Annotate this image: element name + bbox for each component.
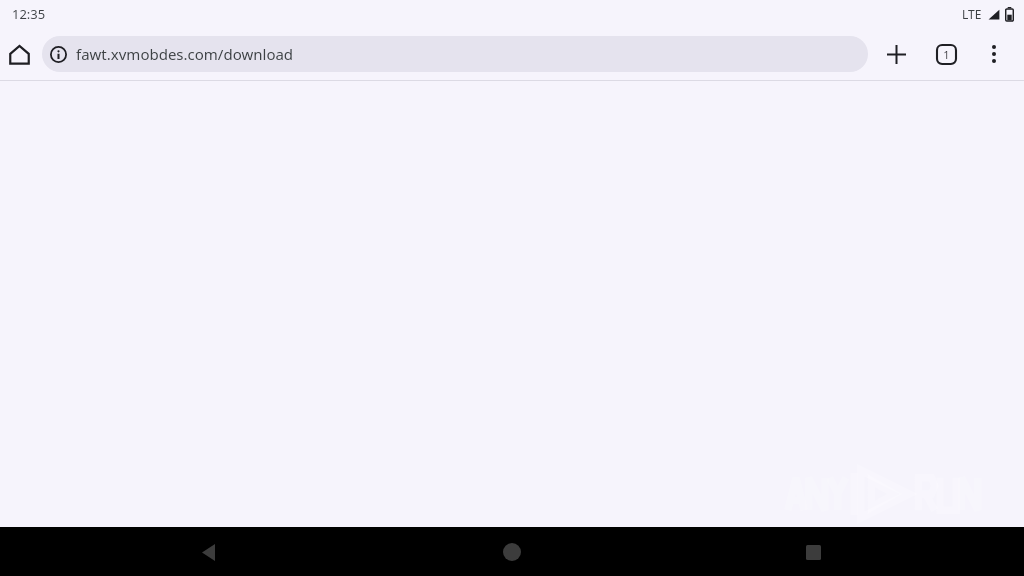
button[interactable]: Recent apps xyxy=(789,528,837,576)
button[interactable]: Back xyxy=(184,528,232,576)
button[interactable]: Home xyxy=(488,528,536,576)
button[interactable]: fawt.xvmobdes.com/download xyxy=(42,36,868,72)
button[interactable]: Home xyxy=(2,37,36,71)
button[interactable]: New tab xyxy=(878,36,914,72)
staticText: 1 xyxy=(943,47,950,62)
staticText: 12:35 xyxy=(12,5,46,23)
button[interactable]: More options xyxy=(976,36,1012,72)
staticText: LTE xyxy=(962,6,982,22)
staticText: fawt.xvmobdes.com/download xyxy=(76,44,294,64)
button[interactable]: Switch tabs, 1 tab open xyxy=(928,36,964,72)
